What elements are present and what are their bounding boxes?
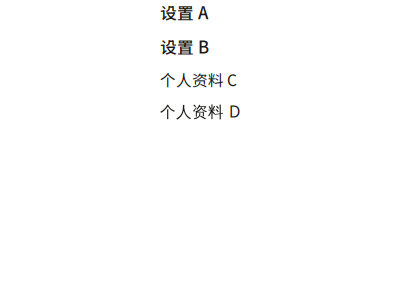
staticText: 设置 A	[160, 0, 208, 24]
staticText: 设置 B	[160, 34, 209, 58]
staticText: 个人资料 D	[160, 101, 240, 122]
staticText: 个人资料 C	[160, 68, 237, 91]
